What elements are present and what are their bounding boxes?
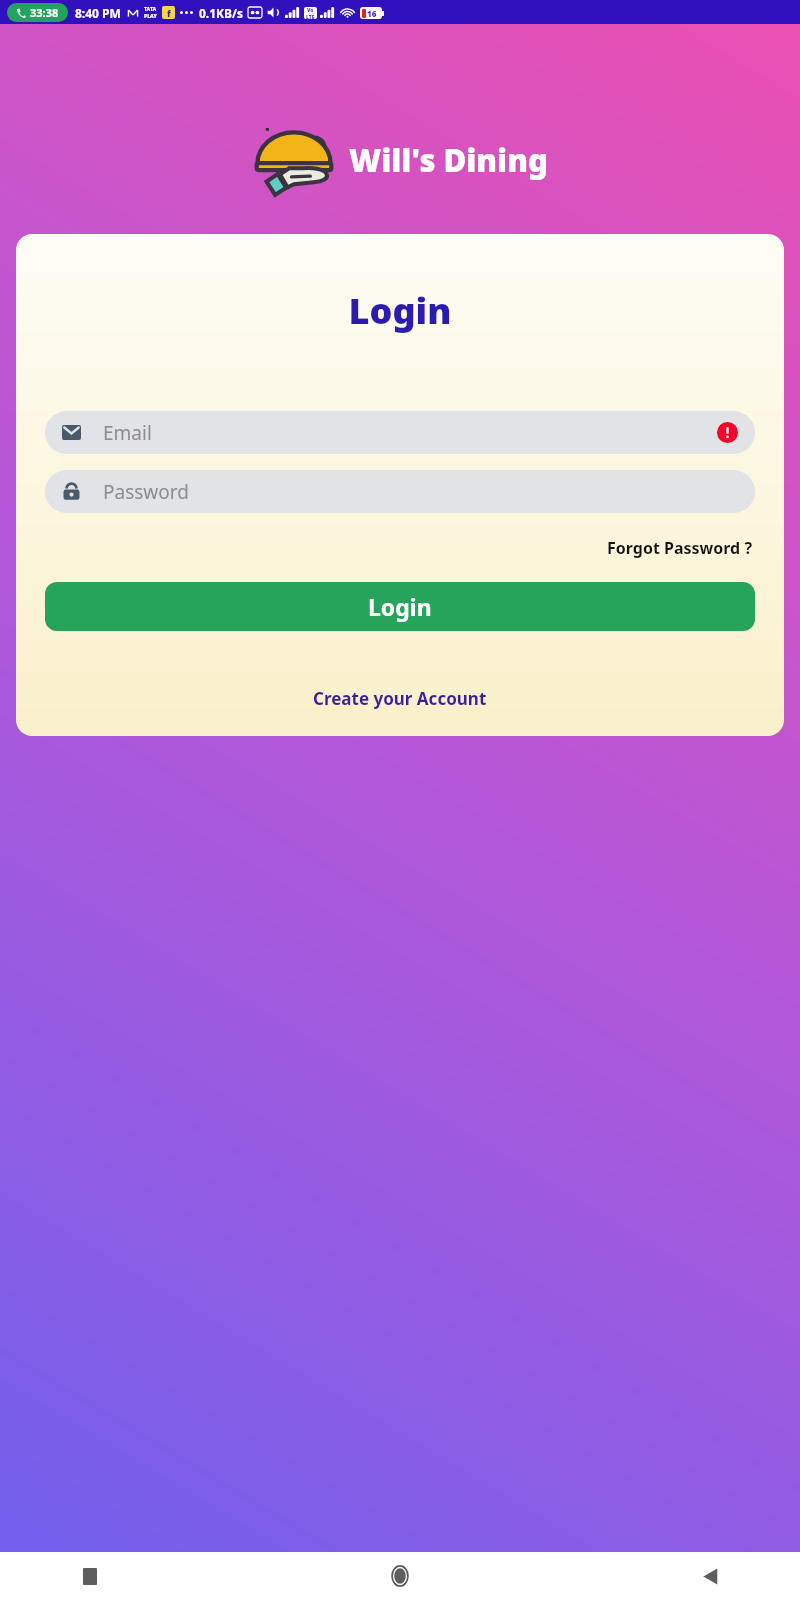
staticText: Forgot Password ?: [607, 537, 753, 559]
staticText: Password: [103, 479, 738, 505]
button[interactable]: Home: [380, 1556, 420, 1596]
staticText: 8:40 PM: [75, 5, 121, 21]
staticText: 33:38: [30, 5, 59, 20]
button[interactable]: Login: [45, 582, 755, 631]
staticText: Vo: [307, 7, 314, 14]
staticText: Create your Account: [313, 687, 487, 710]
staticText: LTE: [306, 14, 315, 19]
staticText: Email: [103, 420, 717, 446]
other: Email error: [717, 422, 738, 443]
staticText: 0.1KB/s: [199, 5, 244, 21]
staticText: PLAY: [144, 13, 157, 20]
button[interactable]: Back: [690, 1556, 730, 1596]
button[interactable]: Recent apps: [70, 1556, 110, 1596]
staticText: Login: [368, 591, 432, 622]
button[interactable]: Password: [45, 470, 755, 513]
staticText: Will's Dining: [349, 139, 548, 181]
staticText: f: [167, 7, 171, 19]
button[interactable]: Email: [45, 411, 755, 454]
staticText: 16: [367, 8, 377, 19]
staticText: TATA: [144, 6, 157, 13]
staticText: Login: [16, 286, 784, 335]
button[interactable]: Create your Account: [310, 685, 490, 712]
button[interactable]: Forgot Password ?: [605, 535, 755, 561]
